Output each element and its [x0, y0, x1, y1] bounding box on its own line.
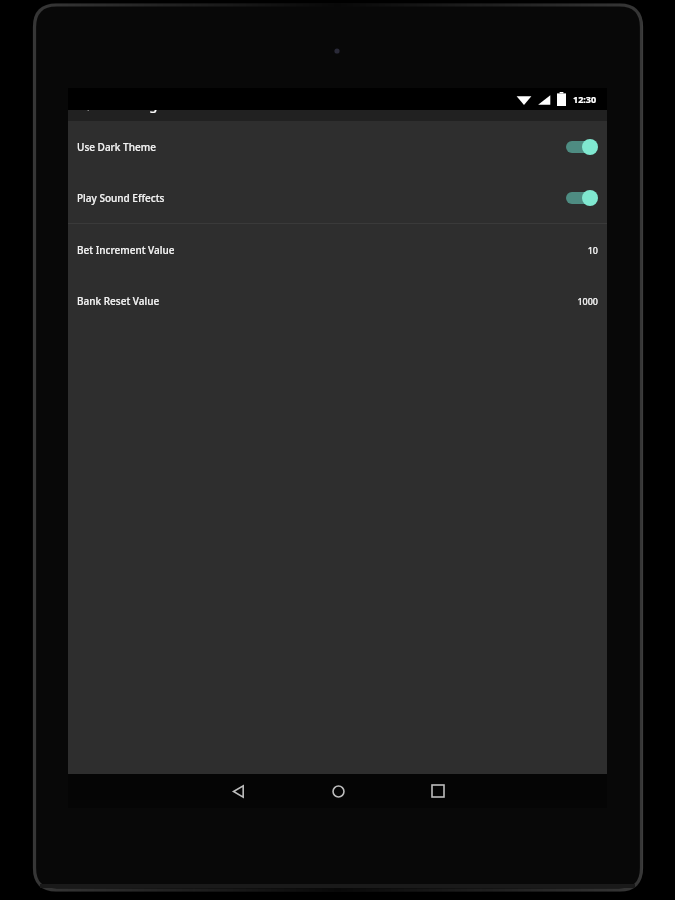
- button[interactable]: Home: [305, 774, 371, 808]
- staticText: 10: [587, 244, 598, 256]
- button[interactable]: Back: [74, 90, 104, 120]
- button[interactable]: Play Sound Effects: [68, 172, 607, 223]
- button[interactable]: Recent apps: [405, 774, 471, 808]
- staticText: Bet Increment Value: [77, 243, 587, 257]
- button[interactable]: Use Dark Theme: [68, 121, 607, 172]
- button[interactable]: Bank Reset Value: [68, 275, 607, 326]
- staticText: Settings: [113, 96, 164, 114]
- staticText: 12:30: [573, 93, 597, 105]
- staticText: 1000: [577, 295, 598, 307]
- staticText: Play Sound Effects: [77, 191, 566, 205]
- staticText: Bank Reset Value: [77, 294, 577, 308]
- button[interactable]: Bet Increment Value: [68, 224, 607, 275]
- staticText: Use Dark Theme: [77, 140, 566, 154]
- button[interactable]: Back: [205, 774, 271, 808]
